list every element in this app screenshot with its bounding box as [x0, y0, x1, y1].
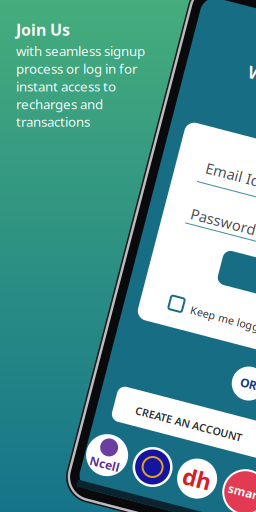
staticText: Password: [178, 189, 245, 208]
staticText: Ncell: [142, 455, 173, 471]
staticText: Join Us: [16, 19, 70, 40]
staticText: dh: [236, 439, 256, 469]
staticText: CREATE AN ACCOUNT: [174, 396, 256, 410]
staticText: Keep me logged in: [202, 285, 256, 299]
staticText: Email Id: [181, 141, 237, 160]
staticText: with seamless signup process or log in f…: [16, 42, 145, 130]
